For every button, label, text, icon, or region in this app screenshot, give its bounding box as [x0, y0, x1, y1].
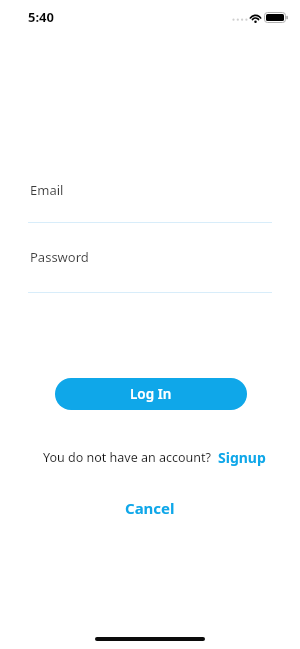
staticText: 5:40 — [28, 8, 54, 26]
button[interactable]: Signup — [218, 448, 266, 467]
staticText: Log In — [130, 385, 172, 403]
staticText: You do not have an account? — [43, 449, 211, 466]
staticText: Password — [30, 248, 89, 266]
button[interactable]: Cancel — [125, 498, 175, 518]
button[interactable]: Log In — [55, 378, 247, 410]
staticText: Email — [30, 181, 64, 199]
